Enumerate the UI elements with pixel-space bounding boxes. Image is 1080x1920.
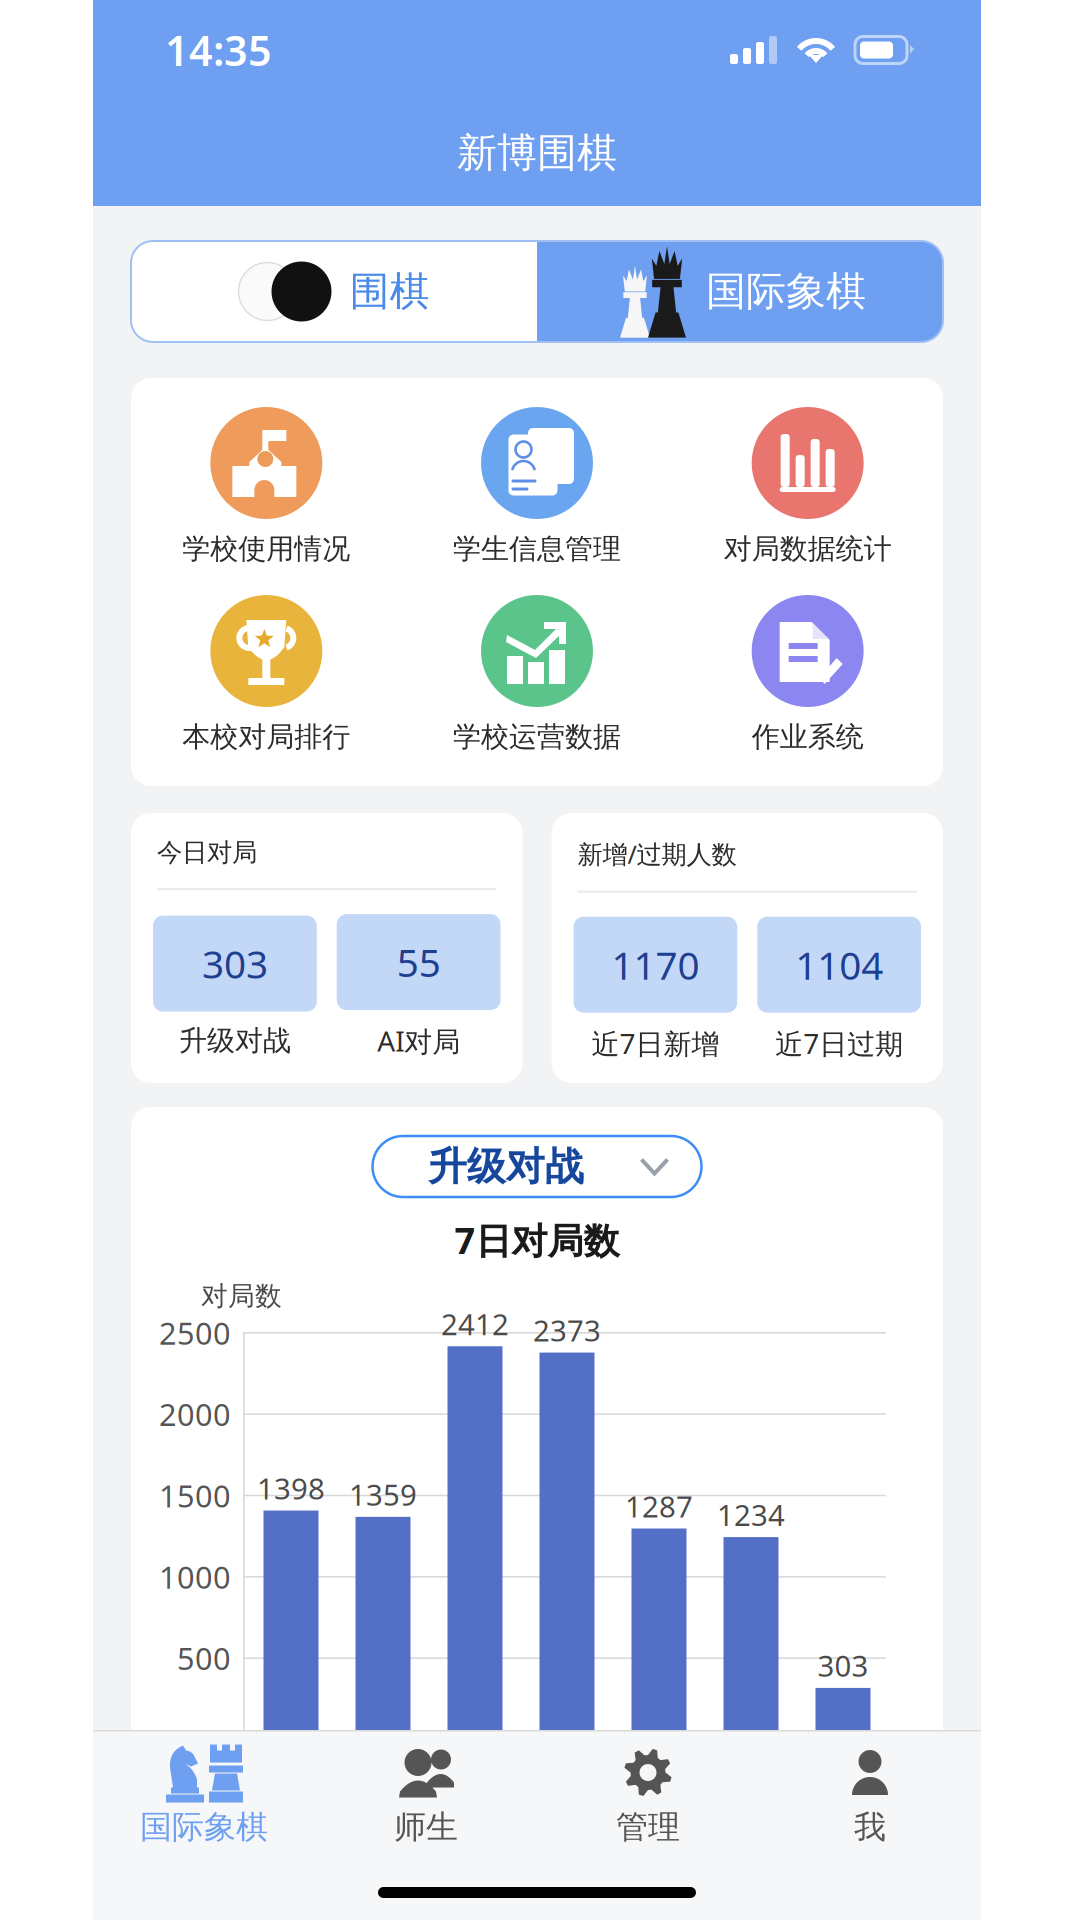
staticText: 升级对战 xyxy=(179,1024,291,1058)
staticText: 2500 xyxy=(159,1312,231,1353)
button[interactable]: 对局数据统计 xyxy=(672,407,943,569)
button[interactable]: 学校运营数据 xyxy=(402,595,672,757)
staticText: 今日对局 xyxy=(157,837,257,868)
staticText: 我 xyxy=(854,1807,886,1847)
button[interactable]: 作业系统 xyxy=(672,595,943,757)
button[interactable]: 国际象棋 xyxy=(93,1741,315,1847)
staticText: 学生信息管理 xyxy=(453,532,621,566)
button[interactable]: 升级对战 xyxy=(372,1136,701,1197)
staticText: 1287 xyxy=(625,1487,693,1526)
staticText: 500 xyxy=(177,1638,231,1678)
staticText: 对局数据统计 xyxy=(724,532,892,566)
staticText: 本校对局排行 xyxy=(182,720,350,754)
staticText: 近7日新增 xyxy=(591,1025,719,1062)
button[interactable]: 管理 xyxy=(537,1741,759,1847)
staticText: 管理 xyxy=(616,1807,680,1847)
staticText: AI对局 xyxy=(377,1022,460,1059)
staticText: 2373 xyxy=(533,1311,601,1350)
staticText: 1104 xyxy=(795,939,883,990)
staticText: 近7日过期 xyxy=(775,1025,903,1062)
staticText: 14:35 xyxy=(165,23,272,77)
staticText: 作业系统 xyxy=(752,720,864,754)
button[interactable]: 学生信息管理 xyxy=(402,407,672,569)
staticText: 国际象棋 xyxy=(140,1807,268,1847)
button[interactable]: 我 xyxy=(759,1741,981,1847)
staticText: 国际象棋 xyxy=(706,267,866,316)
staticText: 对局数 xyxy=(201,1280,282,1312)
staticText: 1234 xyxy=(717,1495,785,1534)
staticText: 2412 xyxy=(441,1304,509,1343)
staticText: 学校使用情况 xyxy=(182,532,350,566)
staticText: 新博围棋 xyxy=(457,128,617,177)
staticText: 升级对战 xyxy=(428,1143,584,1190)
staticText: 1398 xyxy=(257,1469,325,1508)
staticText: 1000 xyxy=(159,1556,231,1597)
button[interactable]: 师生 xyxy=(315,1741,537,1847)
staticText: 1170 xyxy=(611,939,699,990)
staticText: 2000 xyxy=(159,1394,231,1434)
staticText: 7日对局数 xyxy=(454,1216,619,1264)
button[interactable]: 学校使用情况 xyxy=(131,407,402,569)
staticText: 学校运营数据 xyxy=(453,720,621,754)
staticText: 围棋 xyxy=(349,267,429,316)
staticText: 303 xyxy=(817,1646,868,1685)
staticText: 新增/过期人数 xyxy=(577,837,736,871)
staticText: 1500 xyxy=(159,1475,231,1516)
staticText: 303 xyxy=(202,938,268,989)
staticText: 师生 xyxy=(394,1807,458,1847)
button[interactable]: 本校对局排行 xyxy=(131,595,402,757)
button[interactable]: 围棋 xyxy=(131,241,537,342)
staticText: 1359 xyxy=(349,1475,417,1514)
staticText: 55 xyxy=(397,936,441,988)
button[interactable]: 国际象棋 xyxy=(537,241,943,342)
